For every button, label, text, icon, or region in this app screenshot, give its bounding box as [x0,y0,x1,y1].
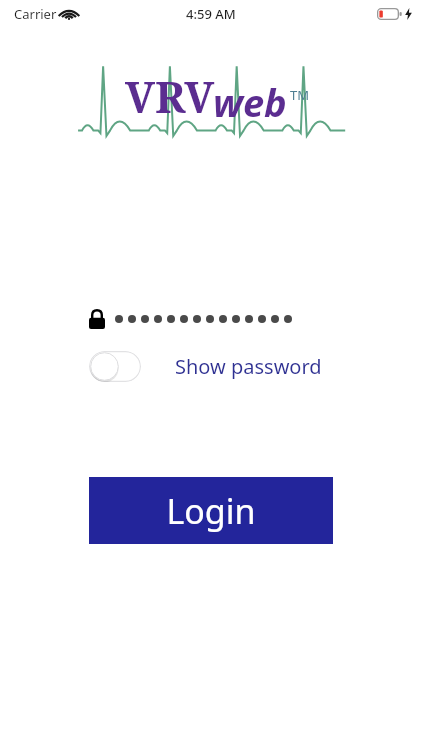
staticText: TM [290,86,310,104]
staticText: VRV [125,67,215,126]
button[interactable]: Show password [175,353,322,380]
staticText: Carrier [14,5,57,23]
button[interactable]: Login [89,477,333,544]
staticText: web [213,76,287,128]
staticText: Login [166,488,256,534]
button[interactable]: Show password toggle [89,351,141,382]
staticText: 4:59 AM [186,5,236,23]
